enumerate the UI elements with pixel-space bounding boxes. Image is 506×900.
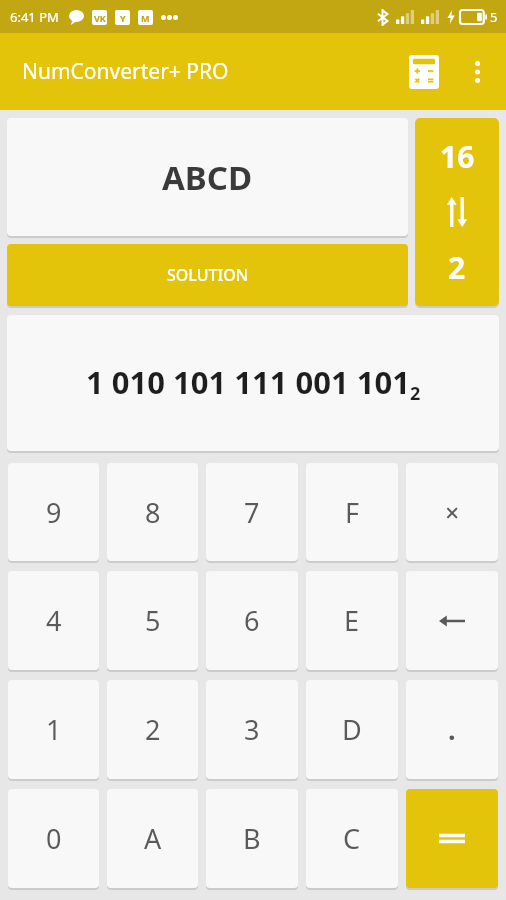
staticText: . [448, 711, 456, 748]
staticText: 7 [244, 494, 260, 531]
staticText: D [342, 711, 362, 748]
button[interactable]: 3 [206, 680, 298, 779]
button[interactable]: Swap bases 16 and 2 [415, 118, 499, 306]
staticText: E [344, 602, 360, 639]
button[interactable]: 8 [107, 463, 198, 561]
button[interactable]: 1 [8, 680, 99, 779]
staticText: B [243, 820, 261, 857]
staticText: Y [120, 12, 126, 24]
button[interactable]: 7 [206, 463, 298, 561]
staticText: 8 [145, 494, 161, 531]
staticText: 9 [46, 494, 62, 531]
staticText: 0 [46, 820, 62, 857]
staticText: NumConverter+ PRO [22, 57, 229, 86]
staticText: A [144, 820, 162, 857]
button[interactable]: ABCD [7, 118, 408, 236]
button[interactable]: Calculator [400, 48, 448, 96]
button[interactable]: 5 [107, 571, 198, 670]
button[interactable]: 4 [8, 571, 99, 670]
button[interactable]: C [306, 789, 398, 888]
button[interactable]: 0 [8, 789, 99, 888]
staticText: 2 [145, 711, 161, 748]
button[interactable]: SOLUTION [7, 244, 408, 306]
staticText: M [141, 12, 150, 24]
button[interactable]: 2 [107, 680, 198, 779]
staticText: SOLUTION [167, 264, 249, 286]
button[interactable]: A [107, 789, 198, 888]
button[interactable]: 6 [206, 571, 298, 670]
button[interactable]: D [306, 680, 398, 779]
staticText: × [445, 495, 460, 529]
button[interactable]: More options [454, 49, 500, 95]
button[interactable]: . [406, 680, 498, 779]
button[interactable]: Equals [406, 789, 498, 888]
staticText: 3 [244, 711, 260, 748]
button[interactable]: 9 [8, 463, 99, 561]
staticText: ABCD [162, 155, 253, 200]
staticText: 16 [440, 136, 475, 177]
staticText: C [343, 820, 361, 857]
staticText: F [345, 494, 360, 531]
button[interactable]: F [306, 463, 398, 561]
button[interactable]: B [206, 789, 298, 888]
staticText: 6:41 PM [10, 8, 59, 26]
staticText: 5 [490, 8, 498, 26]
button[interactable]: 1 010 101 111 001 1012 [7, 315, 499, 451]
staticText: VK [94, 12, 106, 24]
staticText: 5 [145, 602, 161, 639]
staticText: 2 [448, 247, 466, 288]
staticText: 6 [244, 602, 260, 639]
staticText: 4 [46, 602, 62, 639]
staticText: 1 [46, 711, 62, 748]
button[interactable]: × [406, 463, 498, 561]
button[interactable]: E [306, 571, 398, 670]
staticText: 1 010 101 111 001 1012 [86, 361, 421, 406]
button[interactable]: Backspace [406, 571, 498, 670]
